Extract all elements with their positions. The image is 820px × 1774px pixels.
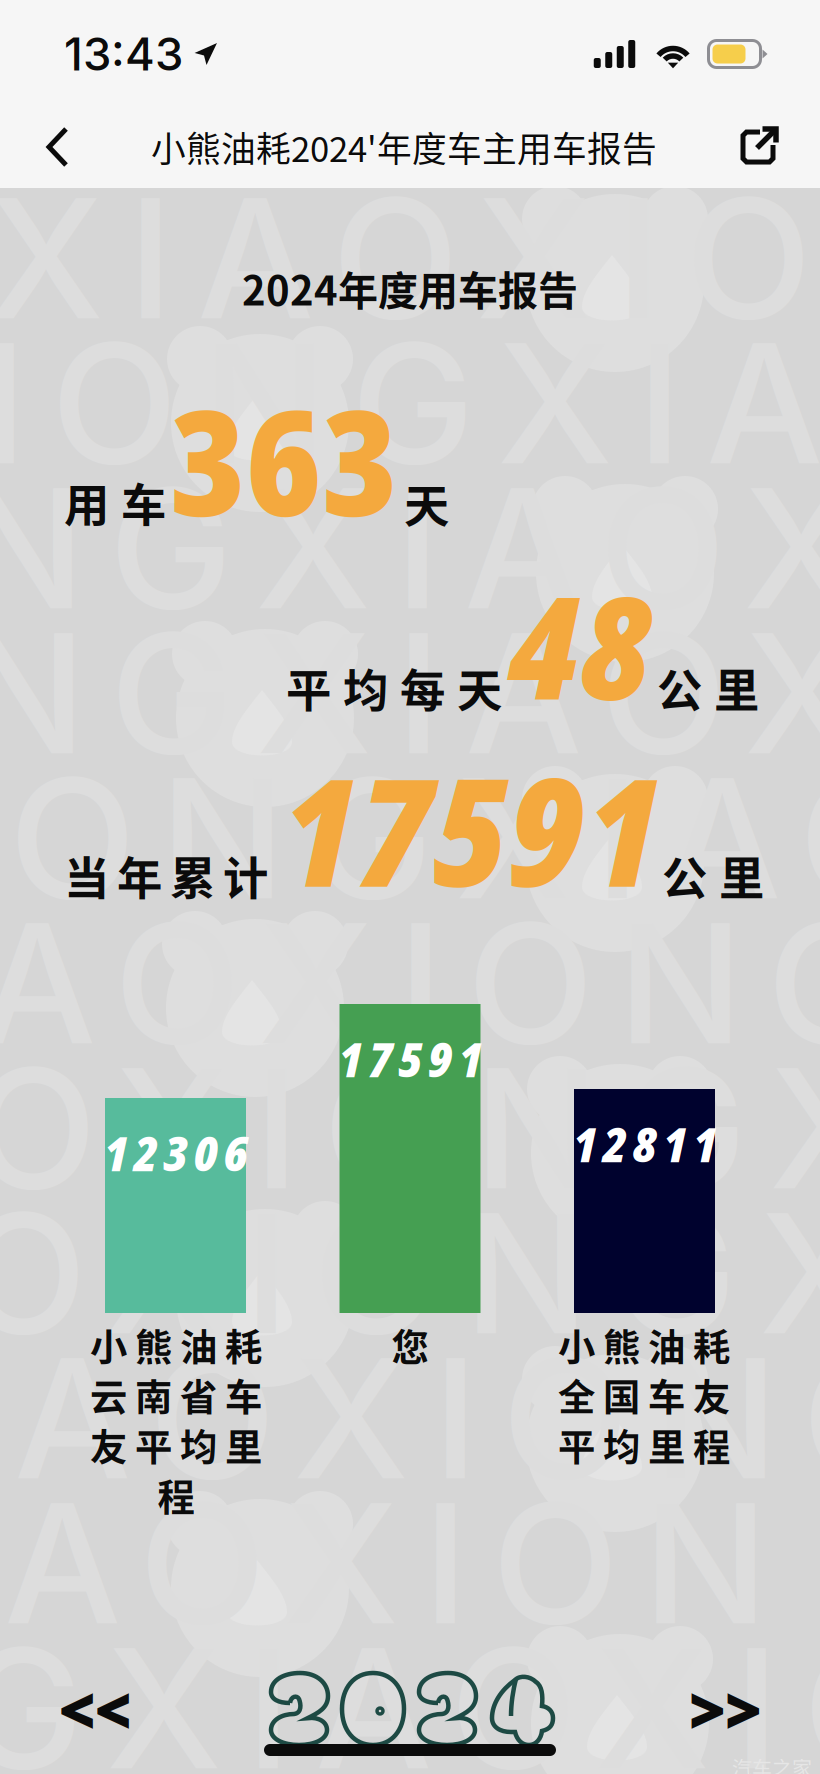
- staticText: 程: [157, 1468, 194, 1522]
- staticText: 公里: [657, 655, 759, 720]
- button[interactable]: Open externally: [718, 107, 798, 187]
- staticText: 公里: [662, 843, 764, 908]
- staticText: 您: [391, 1318, 428, 1372]
- staticText: ONGXIAOX: [0, 593, 820, 793]
- staticText: 小熊油耗: [90, 1318, 262, 1372]
- button[interactable]: Next report: [650, 1664, 800, 1754]
- staticText: 当年累计: [64, 843, 268, 908]
- staticText: 平均里程: [558, 1418, 730, 1472]
- staticText: 17591: [338, 1026, 482, 1091]
- staticText: XIAOXION: [0, 158, 820, 358]
- staticText: 平均每天: [286, 655, 502, 720]
- staticText: XIAOXION: [0, 1463, 768, 1663]
- staticText: 用车: [64, 469, 166, 535]
- staticText: 小熊油耗2024'年度车主用车报告: [151, 122, 657, 172]
- staticText: 363: [170, 361, 398, 559]
- button[interactable]: Previous report: [20, 1664, 170, 1754]
- staticText: XIAOXIONG: [0, 883, 820, 1083]
- staticText: NGXIAOXI: [0, 448, 820, 648]
- staticText: 13:43: [64, 27, 183, 81]
- staticText: GXIAOXIO: [0, 1608, 820, 1774]
- staticText: 2024年度用车报告: [242, 259, 578, 317]
- staticText: 友平均里: [90, 1418, 262, 1472]
- staticText: IAOXIONG: [0, 1318, 820, 1518]
- staticText: XIONGXIA: [0, 303, 820, 503]
- staticText: 48: [508, 549, 652, 741]
- staticText: 小熊油耗: [558, 1318, 730, 1372]
- staticText: IONGXIAO: [0, 738, 820, 938]
- staticText: 云南省车: [90, 1368, 262, 1422]
- staticText: AOXIONGX: [0, 1173, 820, 1373]
- staticText: 12811: [572, 1111, 716, 1176]
- staticText: 17591: [280, 727, 660, 930]
- staticText: 天: [404, 470, 449, 536]
- staticText: OXIONGXI: [0, 1028, 820, 1228]
- staticText: 全国车友: [558, 1368, 730, 1422]
- staticText: >>: [689, 1662, 761, 1756]
- staticText: 汽车之家: [732, 1753, 812, 1774]
- staticText: 12306: [103, 1120, 247, 1185]
- staticText: <<: [59, 1662, 131, 1756]
- button[interactable]: Back: [18, 107, 98, 187]
